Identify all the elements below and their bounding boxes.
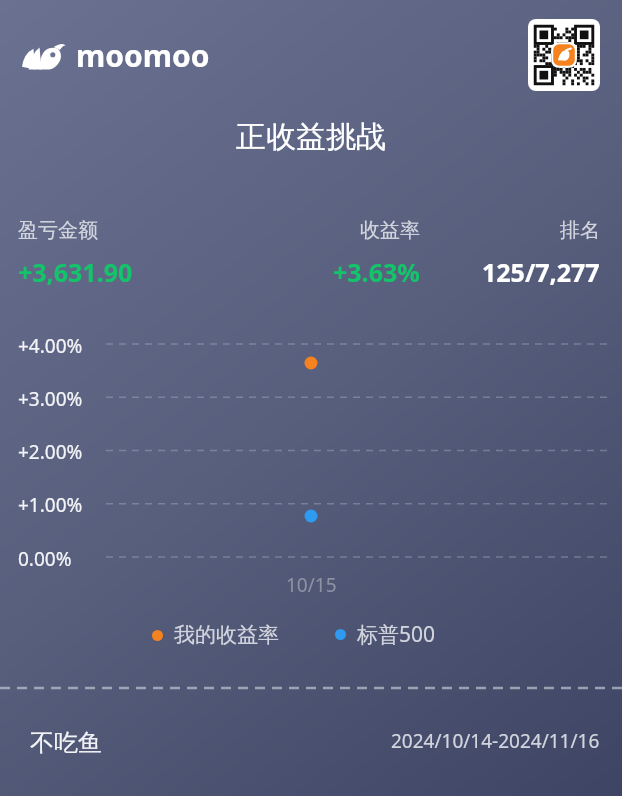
- staticText: 标普500: [357, 620, 436, 649]
- staticText: 0.00%: [18, 546, 72, 572]
- staticText: 2024/10/14-2024/11/16: [391, 728, 600, 754]
- staticText: 我的收益率: [174, 622, 279, 648]
- staticText: 正收益挑战: [236, 118, 386, 156]
- staticText: 125/7,277: [482, 255, 600, 289]
- staticText: 收益率: [360, 218, 420, 243]
- staticText: +3,631.90: [18, 255, 133, 289]
- staticText: 不吃鱼: [30, 728, 102, 758]
- button[interactable]: moomoo: [22, 35, 210, 76]
- staticText: 10/15: [286, 572, 337, 598]
- staticText: +4.00%: [18, 333, 83, 359]
- staticText: +3.00%: [18, 386, 83, 412]
- staticText: +1.00%: [18, 492, 83, 518]
- staticText: 盈亏金额: [18, 218, 98, 243]
- button[interactable]: 我的收益率: [152, 622, 279, 648]
- staticText: 排名: [560, 218, 600, 243]
- button[interactable]: QR code: [528, 19, 600, 91]
- staticText: +2.00%: [18, 439, 83, 465]
- button[interactable]: 标普500: [335, 620, 436, 649]
- staticText: +3.63%: [333, 255, 420, 289]
- staticText: moomoo: [76, 35, 210, 76]
